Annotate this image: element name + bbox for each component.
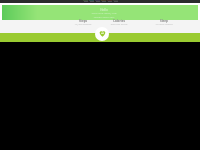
button[interactable]: Favourite: [95, 27, 109, 41]
button[interactable]: Tab 4: [101, 0, 106, 2]
staticText: 7h 20m rested: [140, 22, 188, 25]
staticText: Track your steps, stay: [44, 11, 164, 14]
staticText: Calories: [95, 19, 143, 23]
button[interactable]: Tab 3: [95, 0, 100, 2]
button[interactable]: Tab 6: [113, 0, 118, 2]
staticText: 830 kcal burnt: [95, 22, 143, 25]
staticText: healthy every day: [44, 15, 164, 18]
button[interactable]: Tab 2: [89, 0, 94, 2]
staticText: Sleep: [140, 19, 188, 23]
staticText: Steps: [59, 19, 107, 23]
staticText: Hello: [44, 8, 164, 12]
button[interactable]: Steps: [59, 19, 107, 29]
button[interactable]: Sleep: [140, 19, 188, 29]
staticText: 12,450 walked: [59, 22, 107, 25]
button[interactable]: Tab 5: [107, 0, 112, 2]
button[interactable]: Calories: [95, 19, 143, 29]
button[interactable]: Tab 1: [83, 0, 88, 2]
